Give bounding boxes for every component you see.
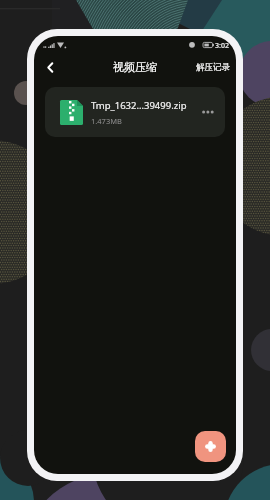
button[interactable]: More options — [196, 100, 220, 124]
staticText: 1.473MB — [91, 116, 122, 126]
staticText: 解压记录 — [196, 62, 230, 73]
staticText: 3:02 — [215, 41, 229, 51]
staticText: 视频压缩 — [113, 60, 157, 74]
button[interactable]: Back — [39, 56, 61, 78]
button[interactable]: Tmp_1632…39499.zip — [45, 87, 225, 137]
button[interactable]: 解压记录 — [196, 62, 230, 73]
button[interactable]: Add — [195, 431, 226, 462]
staticText: Tmp_1632…39499.zip — [91, 99, 187, 112]
